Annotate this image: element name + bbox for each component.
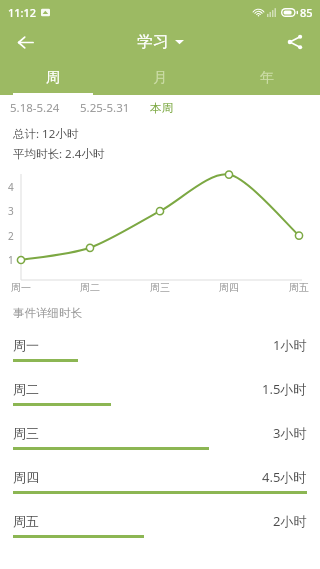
staticText: 85 — [300, 5, 313, 20]
staticText: 2小时 — [273, 512, 307, 530]
staticText: 周 — [46, 69, 60, 87]
staticText: 11:12 — [8, 5, 37, 20]
staticText: 事件详细时长 — [13, 306, 82, 320]
button[interactable]: 周一 — [0, 331, 320, 375]
staticText: 周三 — [13, 425, 39, 441]
button[interactable]: 周二 — [0, 375, 320, 419]
staticText: 2 — [8, 229, 14, 243]
staticText: 1 — [8, 253, 14, 267]
staticText: 学习 — [137, 32, 169, 52]
staticText: 3小时 — [273, 424, 307, 442]
staticText: 3 — [8, 204, 14, 218]
button[interactable]: 学习 — [137, 32, 184, 52]
staticText: 周四 — [216, 281, 242, 294]
button[interactable]: 本周 — [148, 101, 175, 115]
staticText: 周一 — [13, 337, 39, 353]
staticText: 5.25-5.31 — [80, 100, 130, 116]
staticText: 周一 — [8, 281, 34, 294]
staticText: 本周 — [150, 101, 173, 115]
staticText: 1.5小时 — [262, 380, 307, 398]
button[interactable]: 周三 — [0, 419, 320, 463]
button[interactable]: 5.18-5.24 — [8, 100, 62, 116]
staticText: 平均时长: 2.4小时 — [13, 146, 105, 162]
staticText: 年 — [260, 69, 274, 87]
button[interactable]: 周四 — [0, 463, 320, 507]
staticText: 周三 — [147, 281, 173, 294]
button[interactable]: 年 — [213, 60, 320, 95]
staticText: 周二 — [13, 381, 39, 397]
staticText: 4 — [8, 180, 14, 194]
staticText: 1小时 — [273, 336, 307, 354]
button[interactable]: 月 — [106, 60, 213, 95]
button[interactable]: 周五 — [0, 507, 320, 551]
button[interactable]: 周 — [0, 60, 106, 95]
staticText: 周五 — [13, 513, 39, 529]
staticText: 周五 — [286, 281, 312, 294]
staticText: 5.18-5.24 — [10, 100, 60, 116]
button[interactable]: Share — [278, 25, 312, 59]
staticText: 周四 — [13, 469, 39, 485]
staticText: 周二 — [77, 281, 103, 294]
staticText: 月 — [153, 69, 167, 87]
button[interactable]: Back — [8, 25, 42, 59]
staticText: 4.5小时 — [262, 468, 307, 486]
staticText: 总计: 12小时 — [13, 126, 79, 142]
button[interactable]: 5.25-5.31 — [78, 100, 132, 116]
